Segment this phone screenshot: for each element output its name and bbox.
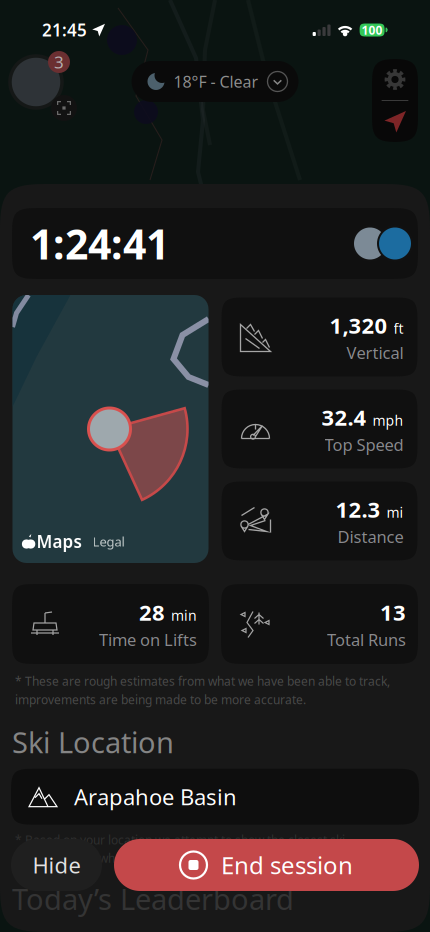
staticText: Today’s Leaderboard <box>12 879 294 918</box>
staticText: 100 <box>362 22 383 38</box>
staticText: Total Runs <box>327 628 406 651</box>
staticText: Maps <box>36 530 81 553</box>
button[interactable]: Recenter map <box>372 101 418 142</box>
button[interactable]: Hide <box>11 839 102 891</box>
staticText: location to you when you start your sess… <box>15 850 254 866</box>
staticText: Ski Location <box>12 722 174 762</box>
staticText: 1,320 <box>329 310 387 340</box>
staticText: Distance <box>337 525 403 548</box>
button[interactable]: 18°F - Clear <box>131 61 298 102</box>
button[interactable]: Arapahoe Basin <box>11 769 419 825</box>
staticText: * These are rough estimates from what we… <box>15 673 390 689</box>
staticText: Legal <box>92 533 124 550</box>
staticText: improvements are being made to be more a… <box>15 691 306 708</box>
staticText: Arapahoe Basin <box>74 782 237 812</box>
staticText: * Based on your location we attempt to s… <box>15 832 345 848</box>
button[interactable]: End session <box>114 839 419 891</box>
staticText: Vertical <box>346 341 403 364</box>
staticText: Time on Lifts <box>99 628 197 651</box>
staticText: mi <box>386 503 403 522</box>
staticText: min <box>171 606 197 625</box>
staticText: Top Speed <box>324 433 403 456</box>
staticText: Hide <box>32 850 80 880</box>
staticText: ft <box>393 319 403 338</box>
staticText: 21:45 <box>42 18 87 42</box>
staticText: 1:24:41 <box>30 216 169 271</box>
staticText: 3 <box>54 50 64 74</box>
button[interactable]: Profile <box>10 57 80 129</box>
staticText: End session <box>221 849 353 881</box>
staticText: 32.4 <box>321 402 366 432</box>
staticText: mph <box>372 411 403 430</box>
button[interactable]: Settings <box>372 59 418 100</box>
staticText: 13 <box>380 597 406 627</box>
staticText: 28 <box>139 597 165 627</box>
staticText: 12.3 <box>335 494 380 524</box>
staticText: 18°F - Clear <box>173 71 258 92</box>
